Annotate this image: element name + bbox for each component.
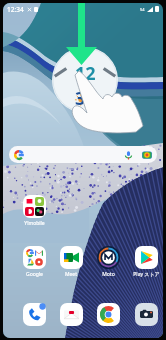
staticText: 12 <box>75 61 96 86</box>
button[interactable]: Camera <box>128 301 163 327</box>
staticText: 54 <box>140 7 145 12</box>
staticText: Google <box>26 271 43 278</box>
staticText: 12:34 <box>7 5 24 14</box>
button[interactable]: Chrome <box>90 301 126 327</box>
button[interactable]: Y!mobile <box>16 195 52 227</box>
staticText: Moto <box>102 271 115 278</box>
button[interactable]: Mail <box>53 301 89 327</box>
staticText: Play ストア <box>133 271 160 278</box>
staticText: Meet <box>65 271 77 278</box>
staticText: Y!mobile <box>24 220 45 227</box>
button[interactable] <box>9 146 157 163</box>
button[interactable]: Play ストア <box>128 246 163 278</box>
button[interactable]: Phone <box>16 301 52 327</box>
button[interactable]: Clock <box>52 47 118 113</box>
button[interactable]: Google <box>16 246 52 278</box>
button[interactable]: Meet <box>53 246 89 278</box>
staticText: 34 <box>75 86 96 111</box>
button[interactable]: Moto <box>90 246 126 278</box>
